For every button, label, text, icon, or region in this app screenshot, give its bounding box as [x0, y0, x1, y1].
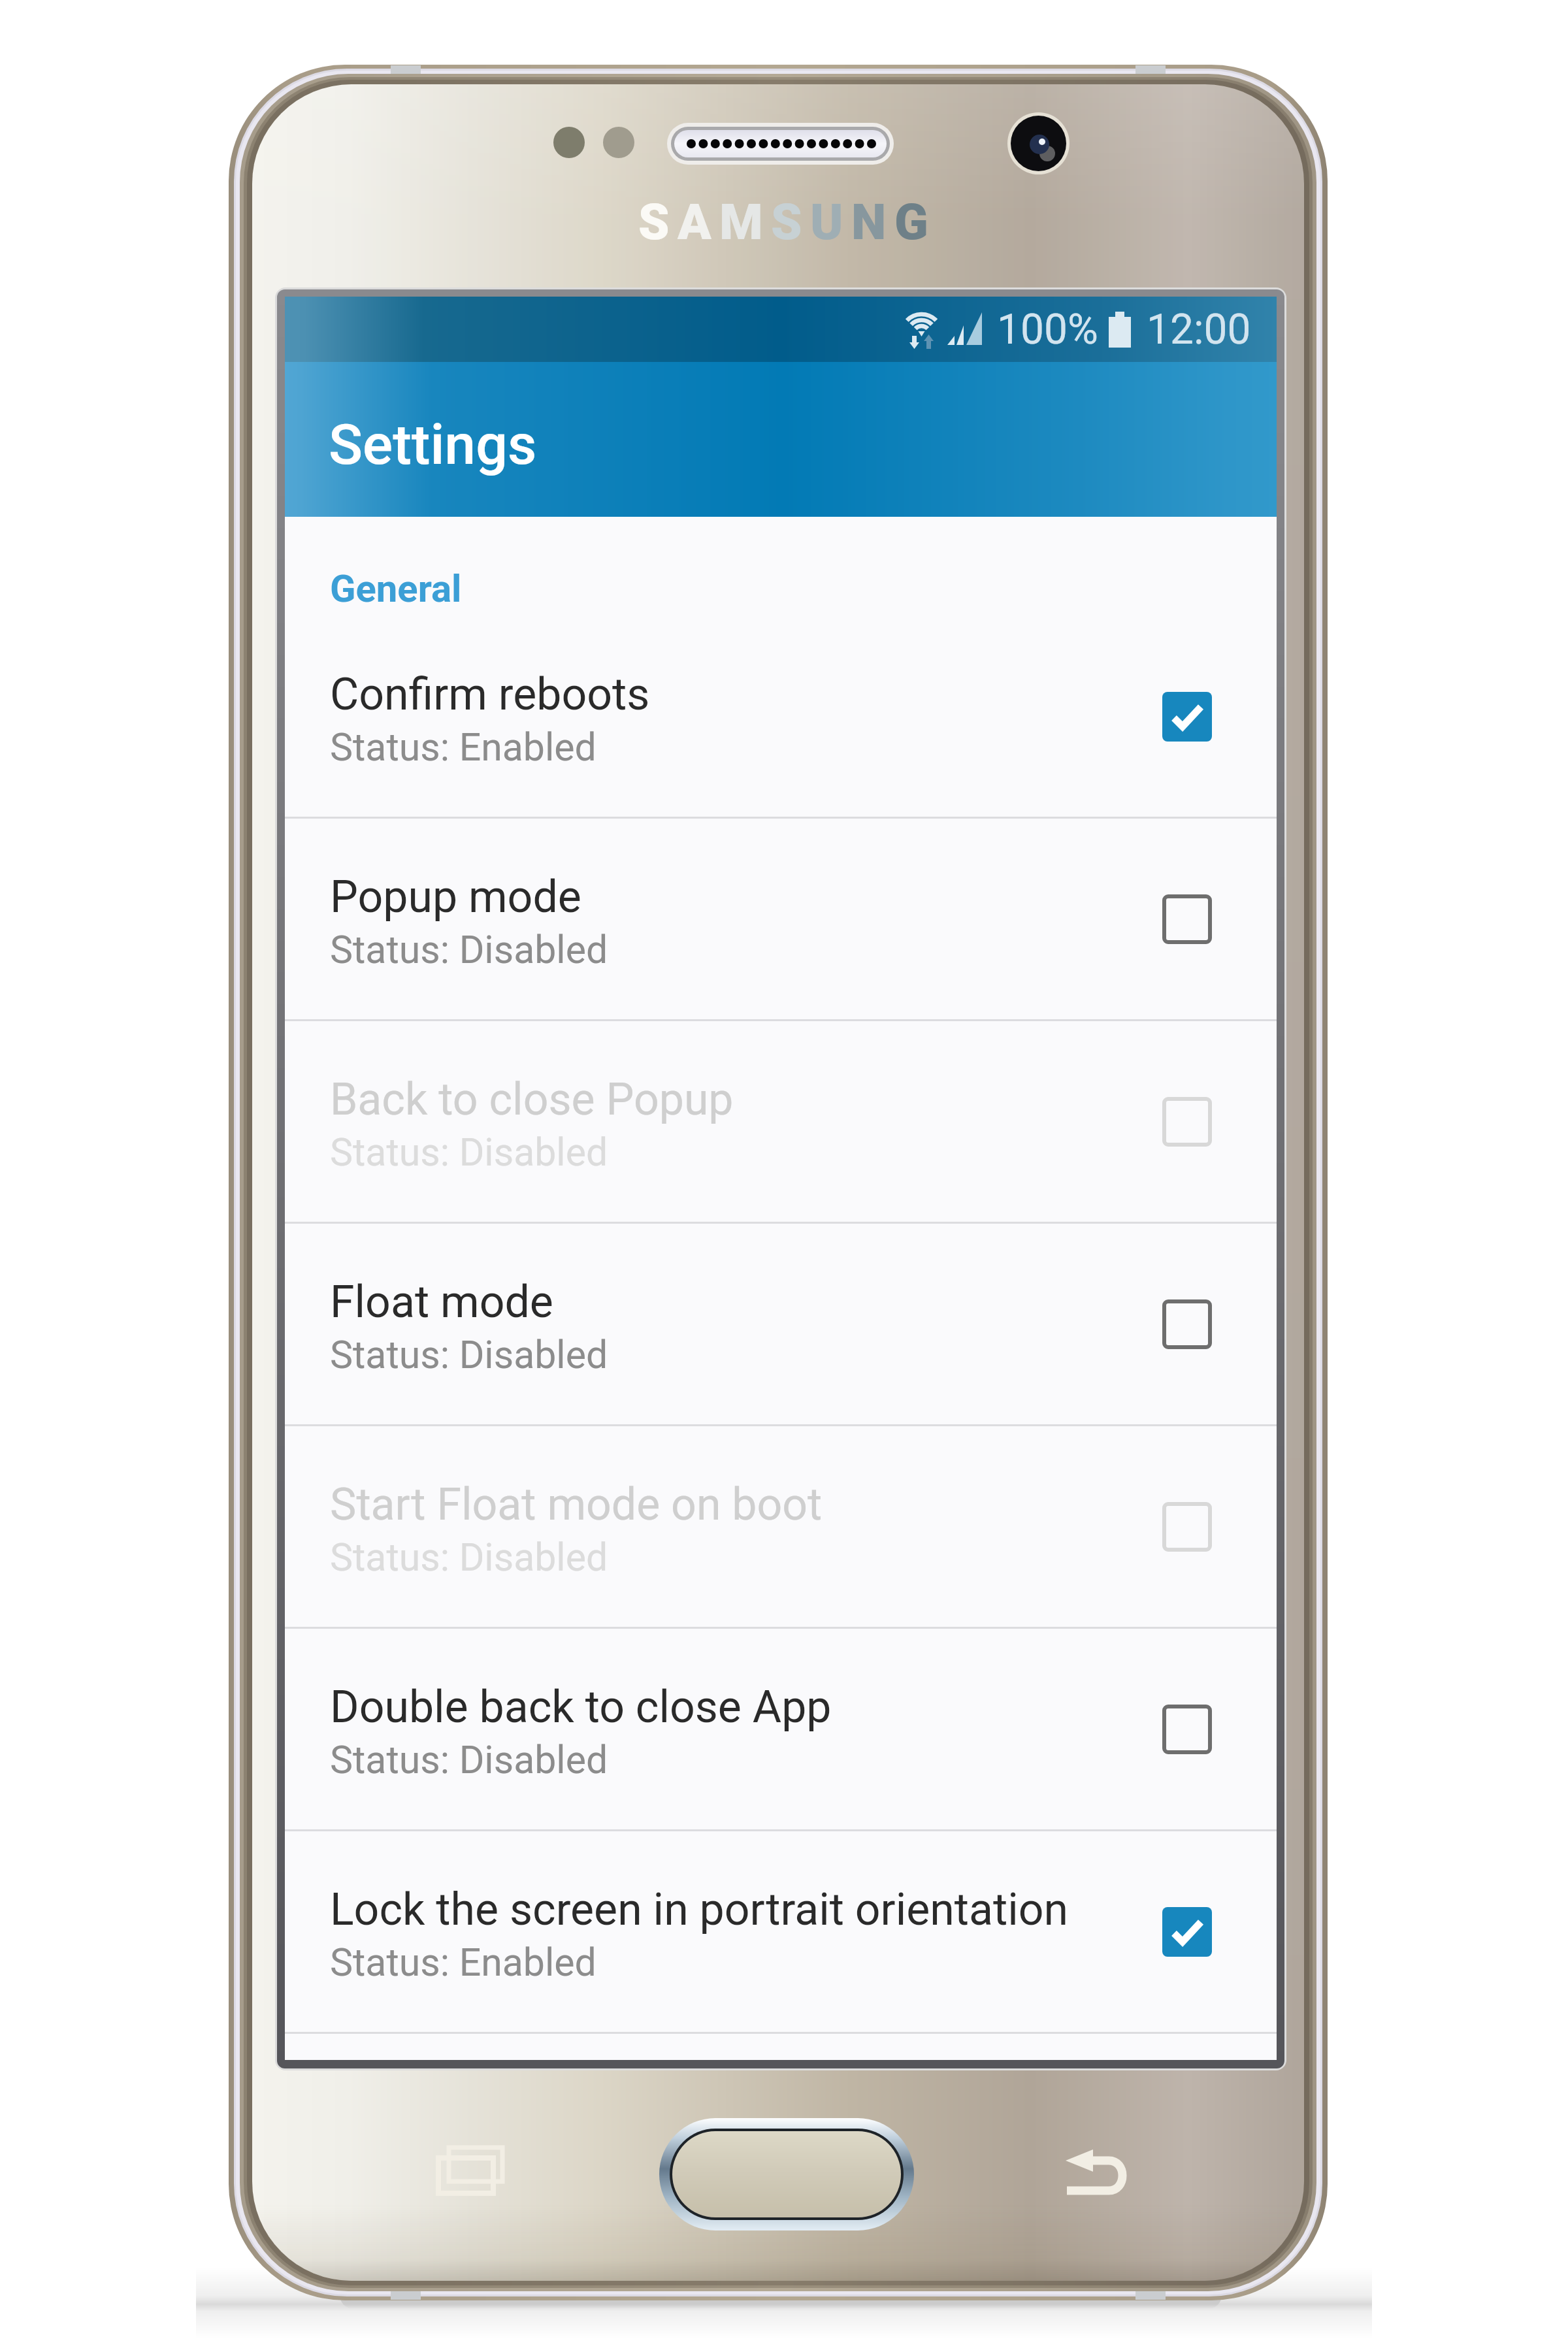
button[interactable]: Double back to close App	[285, 1629, 1277, 1829]
button[interactable]: Home	[659, 2118, 914, 2230]
staticText: Status: Disabled	[330, 1332, 608, 1377]
staticText: Status: Disabled	[330, 1535, 608, 1580]
staticText: N	[851, 193, 894, 251]
staticText: Double back to close App	[330, 1681, 832, 1733]
staticText: S	[771, 193, 810, 251]
staticText: Status: Disabled	[330, 927, 608, 972]
button[interactable]: Unchecked, toggle on	[1162, 1704, 1213, 1755]
staticText: U	[810, 193, 851, 251]
staticText: Settings	[329, 412, 537, 478]
staticText: Confirm reboots	[330, 668, 650, 721]
staticText: Back to close Popup	[330, 1073, 734, 1126]
staticText: Status: Disabled	[330, 1130, 608, 1175]
staticText: S	[638, 193, 678, 251]
staticText: Float mode	[330, 1276, 553, 1328]
button[interactable]: Back	[1058, 2144, 1136, 2202]
button[interactable]: Lock the screen in portrait orientation	[285, 1831, 1277, 2032]
staticText: Status: Enabled	[330, 725, 596, 770]
staticText: Lock the screen in portrait orientation	[330, 1884, 1069, 1936]
staticText: General	[330, 566, 462, 611]
button[interactable]: Float mode	[285, 1224, 1277, 1424]
button[interactable]: Checked, toggle off	[1162, 1906, 1213, 1957]
button[interactable]: Confirm reboots	[285, 616, 1277, 817]
staticText: 12:00	[1147, 305, 1251, 354]
staticText: Status: Disabled	[330, 1737, 608, 1782]
staticText: Popup mode	[330, 871, 581, 923]
staticText: Start Float mode on boot	[330, 1478, 823, 1531]
button[interactable]: Unchecked, toggle on	[1162, 1501, 1213, 1552]
button[interactable]: Unchecked, toggle on	[1162, 1096, 1213, 1147]
staticText: M	[719, 193, 771, 251]
staticText: 100%	[997, 305, 1098, 354]
button[interactable]: Recents	[432, 2140, 510, 2198]
staticText: A	[678, 193, 719, 251]
staticText: G	[894, 193, 936, 251]
button[interactable]: Start Float mode on boot	[285, 1426, 1277, 1627]
button[interactable]: Checked, toggle off	[1162, 691, 1213, 742]
button[interactable]: Back to close Popup	[285, 1021, 1277, 1222]
button[interactable]: Unchecked, toggle on	[1162, 1299, 1213, 1350]
button[interactable]: Unchecked, toggle on	[1162, 894, 1213, 945]
staticText: Status: Enabled	[330, 1940, 596, 1985]
button[interactable]: Popup mode	[285, 819, 1277, 1019]
